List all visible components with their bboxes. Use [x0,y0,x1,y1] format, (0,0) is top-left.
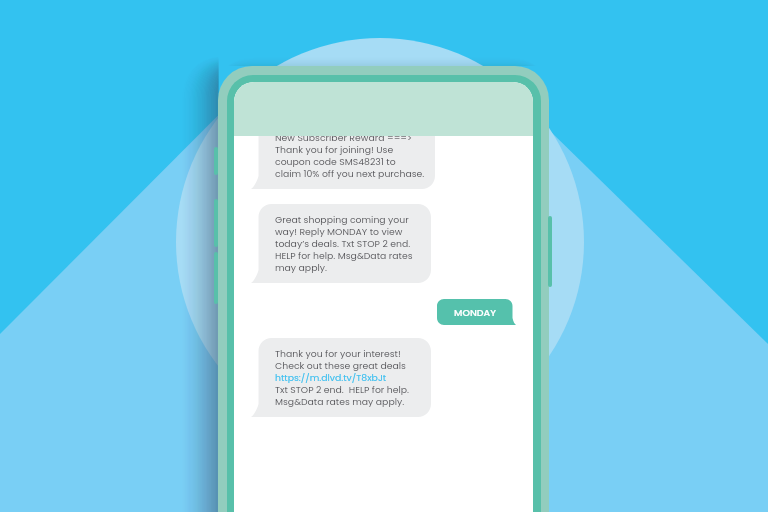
staticText: MONDAY [454,306,496,319]
staticText: Thank you for your interest! Check out t… [275,349,410,409]
staticText: New Subscriber Reward ===> Thank you for… [275,133,425,181]
staticText: Great shopping coming your way! Reply MO… [275,215,413,275]
button[interactable]: New Subscriber Reward ===> Thank you for… [251,123,435,189]
button[interactable]: MONDAY [437,299,516,325]
button[interactable]: Great shopping coming your way! Reply MO… [251,204,431,283]
button[interactable]: Thank you for your interest! Check out t… [251,338,431,417]
